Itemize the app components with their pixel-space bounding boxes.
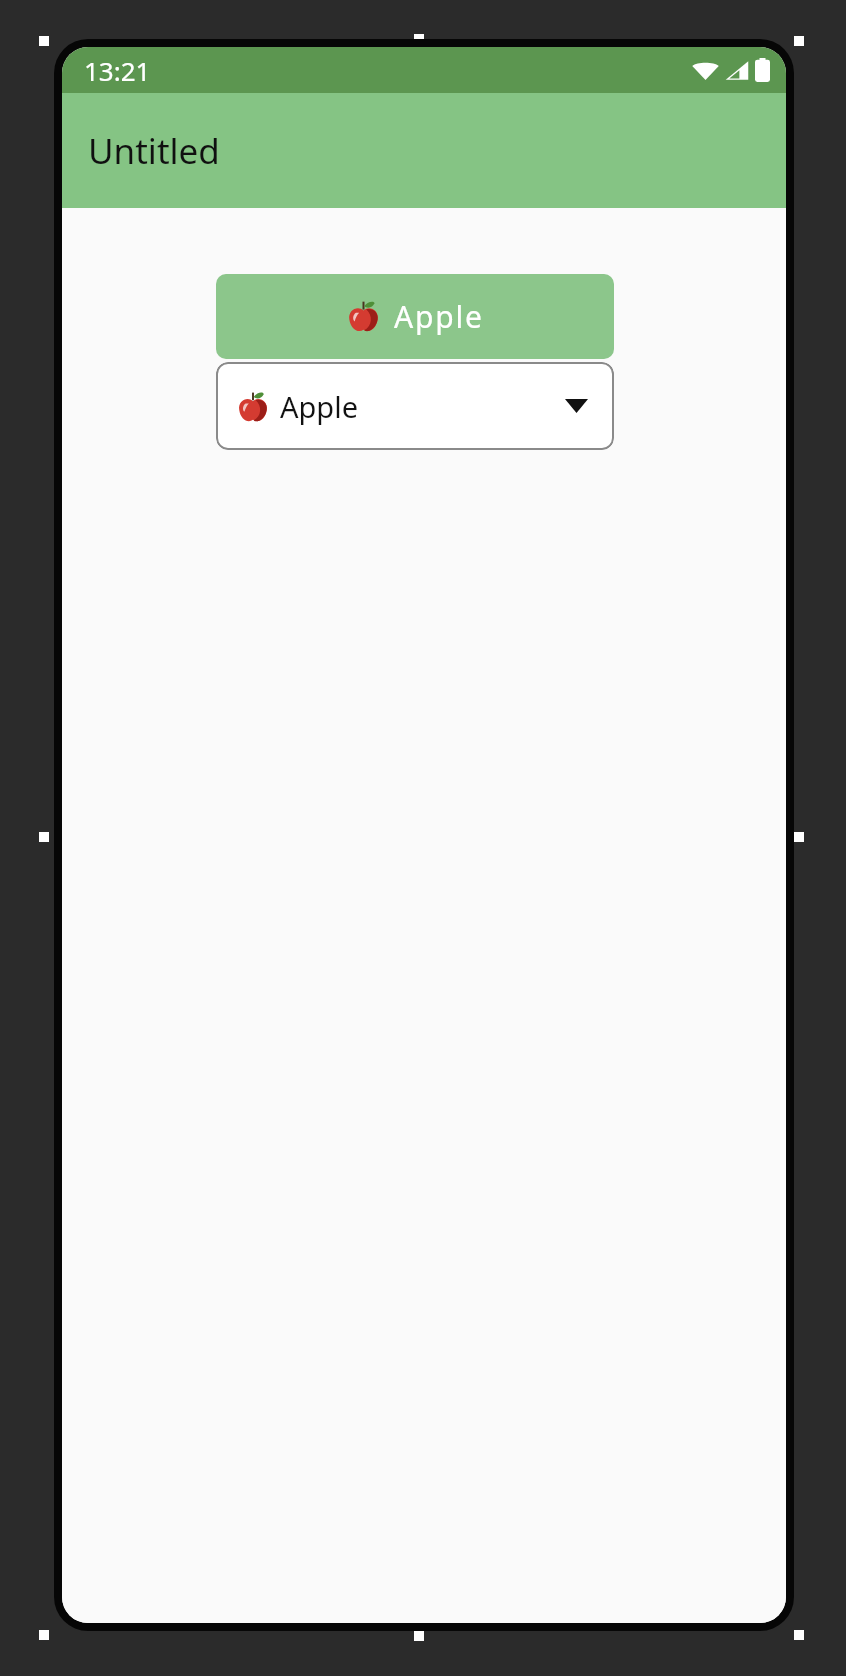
button[interactable]: Apple [216,362,614,450]
staticText: Apple [280,387,359,426]
other: Mobile signal [725,60,749,81]
other: Wi-Fi [692,60,719,81]
other: Battery [755,58,770,82]
staticText: 13:21 [84,53,151,88]
staticText: Apple [394,296,484,337]
staticText: Untitled [88,127,220,175]
button[interactable]: Apple [216,274,614,359]
